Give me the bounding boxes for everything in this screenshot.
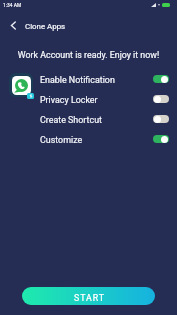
staticText: Customize	[40, 135, 153, 145]
staticText: Privacy Locker	[40, 95, 153, 105]
button[interactable]: Enable Notification	[0, 69, 177, 89]
staticText: Work Account is ready. Enjoy it now!	[0, 50, 177, 60]
button[interactable]: Back	[3, 15, 24, 36]
button[interactable]: Create Shortcut	[0, 109, 177, 129]
button[interactable]: START	[22, 287, 155, 305]
staticText: Enable Notification	[40, 75, 153, 85]
staticText: Create Shortcut	[40, 115, 153, 125]
button[interactable]: Customize	[0, 129, 177, 149]
button[interactable]: Privacy Locker	[0, 89, 177, 109]
staticText: 1:34 AM	[3, 2, 22, 9]
staticText: Clone Apps	[25, 22, 66, 31]
staticText: START	[74, 293, 105, 303]
